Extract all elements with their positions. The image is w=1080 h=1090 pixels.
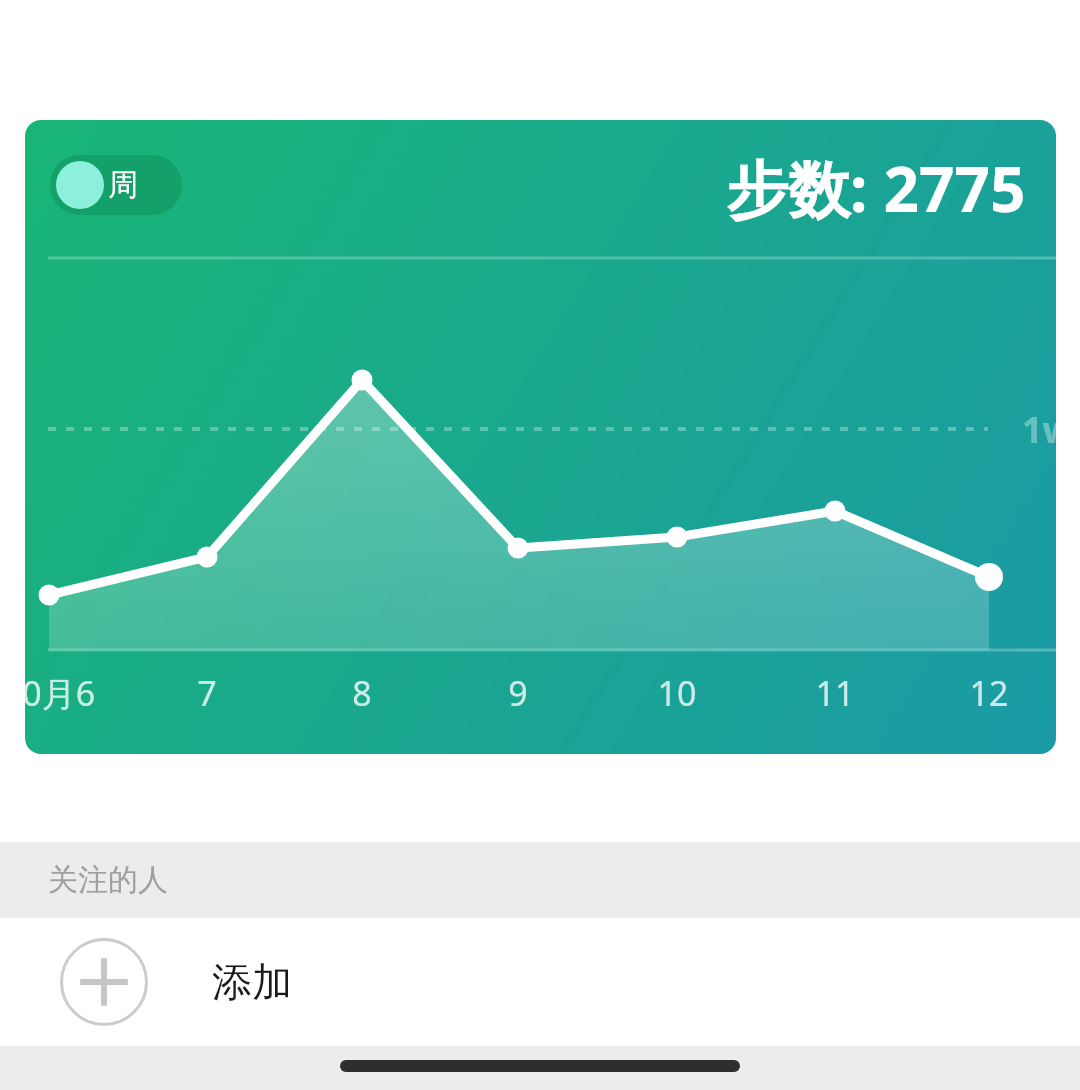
staticText: 关注的人 [48, 861, 168, 899]
staticText: 10 [607, 670, 747, 716]
staticText: 9 [448, 670, 588, 716]
staticText: 添加 [212, 957, 292, 1007]
staticText: 10月6 [25, 670, 119, 716]
staticText: 12 [919, 670, 1056, 716]
staticText: 7 [137, 670, 277, 716]
button[interactable]: 添加 [0, 918, 1080, 1046]
staticText: 1w [1022, 405, 1056, 454]
button[interactable]: 周 [25, 120, 1056, 754]
staticText: 8 [292, 670, 432, 716]
staticText: 11 [765, 670, 905, 716]
staticText: 步数: 2775 [726, 146, 1026, 231]
staticText: 周 [108, 166, 138, 204]
button[interactable]: 周 [50, 155, 182, 215]
